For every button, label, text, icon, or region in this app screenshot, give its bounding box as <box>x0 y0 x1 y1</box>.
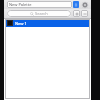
button[interactable]: Search <box>7 10 71 17</box>
button[interactable]: Add <box>73 10 80 17</box>
staticText: Search <box>35 11 48 16</box>
button[interactable]: Remove <box>81 10 88 17</box>
button[interactable]: New Palette <box>7 1 72 8</box>
button[interactable]: New 1 <box>5 19 90 27</box>
button[interactable]: Choose palette <box>73 1 79 8</box>
staticText: New 1 <box>15 21 27 26</box>
button[interactable]: Settings <box>81 1 88 8</box>
staticText: New Palette <box>9 2 32 7</box>
